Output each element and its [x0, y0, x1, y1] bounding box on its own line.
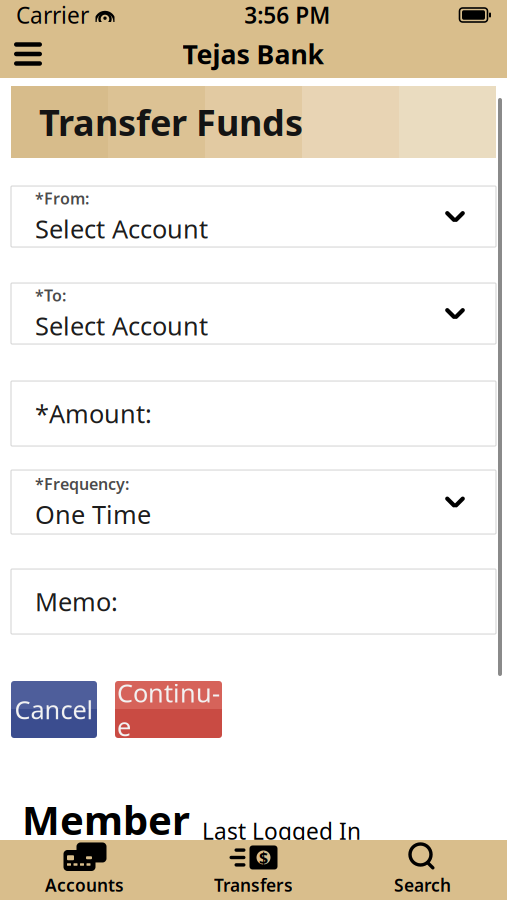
staticText: Cancel	[14, 693, 93, 726]
button[interactable]: Cancel	[11, 681, 97, 738]
button[interactable]: *To:	[11, 283, 496, 344]
button[interactable]: Memo:	[11, 569, 496, 634]
staticText: Continue	[117, 676, 220, 743]
button[interactable]: Menu	[0, 32, 56, 76]
staticText: Tejas Bank	[182, 36, 324, 72]
staticText: Member	[22, 793, 190, 846]
button[interactable]: *Amount:	[11, 381, 496, 446]
button[interactable]: Accounts	[0, 840, 169, 900]
staticText: $	[259, 847, 268, 868]
staticText: Accounts	[45, 873, 124, 896]
staticText: One Time	[35, 497, 151, 531]
staticText: Transfer Funds	[39, 98, 303, 146]
button[interactable]: Search	[338, 840, 507, 900]
staticText: Search	[394, 873, 451, 896]
staticText: Select Account	[35, 212, 208, 245]
button[interactable]: *From:	[11, 186, 496, 247]
staticText: Memo:	[35, 585, 118, 618]
staticText: Transfers	[214, 873, 293, 896]
staticText: Last Logged In	[202, 816, 361, 846]
staticText: Select Account	[35, 309, 208, 342]
button[interactable]: $	[169, 840, 338, 900]
staticText: *To:	[35, 285, 66, 306]
button[interactable]: Continue	[115, 681, 222, 738]
staticText: *Frequency:	[35, 473, 129, 494]
staticText: Carrier	[16, 0, 89, 30]
staticText: *From:	[35, 188, 89, 209]
staticText: 3:56 PM	[244, 0, 330, 30]
staticText: *Amount:	[35, 397, 152, 430]
button[interactable]: Last Logged In	[202, 816, 361, 846]
button[interactable]: *Frequency:	[11, 470, 496, 534]
